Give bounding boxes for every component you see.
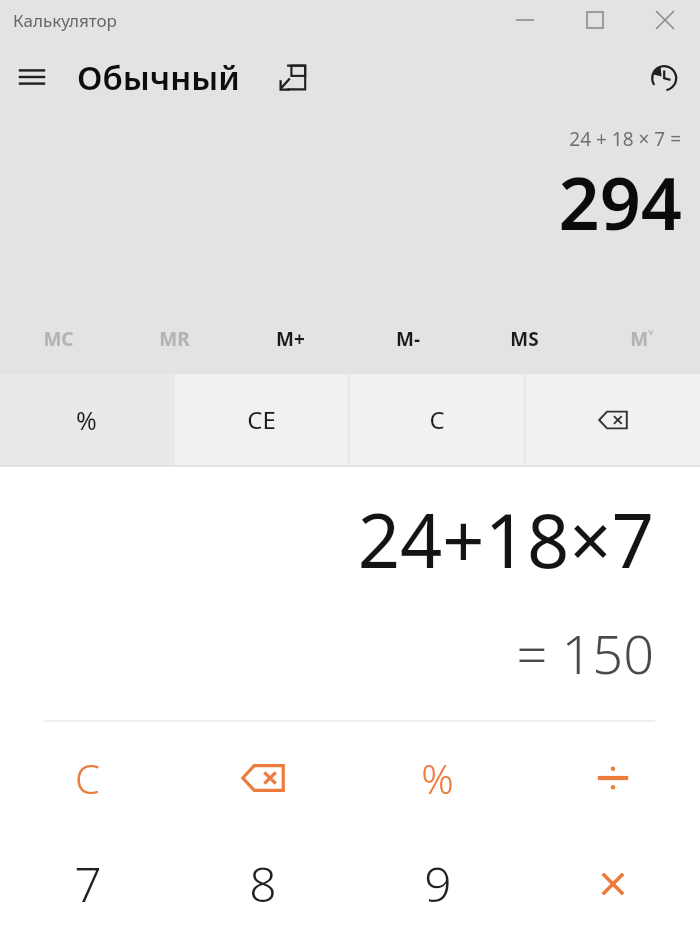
button[interactable]: M+	[232, 306, 349, 372]
staticText: Обычный	[77, 55, 240, 100]
staticText: 24 + 18 × 7 =	[569, 126, 681, 152]
button[interactable]: M-	[349, 306, 466, 372]
button[interactable]: Close	[630, 0, 700, 40]
button[interactable]: 9	[350, 834, 525, 933]
staticText: %	[76, 403, 97, 437]
button[interactable]: Minimize	[490, 0, 560, 40]
staticText: C	[429, 403, 445, 436]
staticText: 24+18×7	[0, 489, 654, 590]
staticText: CE	[247, 403, 276, 436]
button[interactable]: Menu	[6, 51, 58, 103]
button[interactable]: M˅	[583, 306, 700, 372]
staticText: 294	[558, 153, 682, 251]
button[interactable]: MS	[466, 306, 583, 372]
staticText: MR	[159, 326, 190, 352]
staticText: MS	[510, 326, 539, 352]
button[interactable]: C	[350, 374, 524, 465]
button[interactable]: CE	[175, 374, 348, 465]
staticText: Калькулятор	[13, 9, 117, 32]
button[interactable]: MC	[0, 306, 116, 372]
button[interactable]: MR	[116, 306, 232, 372]
button[interactable]: 7	[0, 834, 175, 933]
button[interactable]: Maximize	[560, 0, 630, 40]
staticText: M+	[276, 326, 305, 352]
button[interactable]: 8	[175, 834, 350, 933]
staticText: 8	[249, 851, 277, 916]
staticText: M˅	[630, 326, 654, 352]
button[interactable]: Clear	[0, 722, 175, 834]
staticText: C	[75, 751, 100, 805]
staticText: M-	[396, 326, 420, 352]
button[interactable]: Backspace	[175, 722, 350, 834]
button[interactable]: Keep on top	[268, 53, 316, 101]
button[interactable]: Percent	[350, 722, 525, 834]
button[interactable]: Multiply	[525, 834, 700, 933]
button[interactable]: Divide	[525, 722, 700, 834]
button[interactable]: History	[638, 52, 688, 102]
staticText: 7	[74, 851, 102, 916]
button[interactable]: %	[0, 374, 173, 465]
staticText: 9	[424, 851, 452, 916]
staticText: = 150	[0, 616, 654, 690]
staticText: %	[421, 751, 454, 805]
button[interactable]: Backspace	[526, 374, 700, 465]
staticText: MC	[43, 326, 74, 352]
